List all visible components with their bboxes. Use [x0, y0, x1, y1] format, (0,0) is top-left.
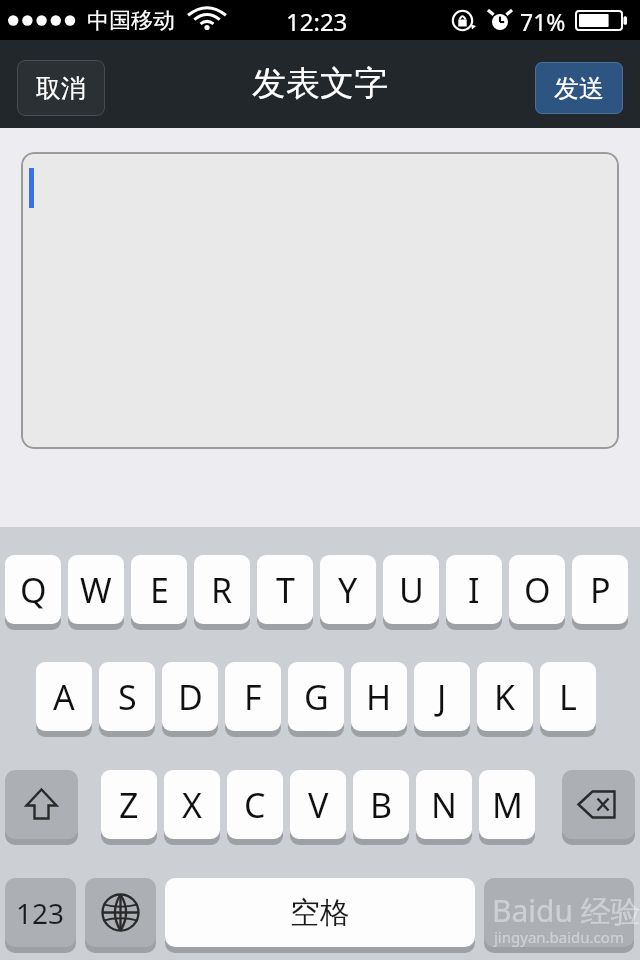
button[interactable]: W	[68, 555, 124, 624]
staticText: Q	[20, 567, 47, 613]
staticText: I	[468, 567, 480, 613]
staticText: E	[150, 567, 169, 613]
button[interactable]: M	[479, 770, 535, 839]
staticText: P	[590, 567, 611, 613]
staticText: G	[304, 674, 329, 720]
button[interactable]: V	[290, 770, 346, 839]
staticText: J	[437, 674, 447, 720]
staticText: 71%	[520, 6, 566, 37]
staticText: U	[399, 567, 424, 613]
staticText: 123	[16, 894, 65, 932]
staticText: Y	[338, 567, 358, 613]
staticText: 发表文字	[252, 62, 388, 105]
staticText: 中国移动	[87, 7, 175, 35]
button[interactable]: 取消	[17, 60, 105, 116]
button[interactable]: Switch keyboard	[85, 878, 156, 947]
staticText: jingyan.baidu.com	[494, 927, 624, 947]
staticText: 12:23	[286, 5, 348, 38]
staticText: Z	[119, 782, 139, 828]
button[interactable]: A	[36, 662, 92, 731]
staticText: D	[178, 674, 203, 720]
button[interactable]: 空格	[165, 878, 475, 947]
staticText: 取消	[36, 73, 86, 104]
button[interactable]: U	[383, 555, 439, 624]
button[interactable]: D	[162, 662, 218, 731]
staticText: 空格	[290, 894, 350, 932]
button[interactable]: X	[164, 770, 220, 839]
button[interactable]: Z	[101, 770, 157, 839]
staticText: A	[53, 674, 75, 720]
button[interactable]: N	[416, 770, 472, 839]
staticText: O	[524, 567, 551, 613]
staticText: K	[494, 674, 516, 720]
button[interactable]: E	[131, 555, 187, 624]
staticText: N	[431, 782, 457, 828]
button[interactable]: 发送	[535, 62, 623, 114]
button[interactable]: Backspace	[562, 770, 635, 839]
staticText: S	[118, 674, 137, 720]
button[interactable]: B	[353, 770, 409, 839]
button[interactable]: F	[225, 662, 281, 731]
staticText: W	[80, 567, 112, 613]
staticText: M	[492, 782, 523, 828]
button[interactable]: J	[414, 662, 470, 731]
staticText: X	[182, 782, 202, 828]
staticText: H	[366, 674, 392, 720]
staticText: R	[211, 567, 233, 613]
button[interactable]: L	[540, 662, 596, 731]
button[interactable]: Return	[484, 878, 634, 947]
button[interactable]: Q	[5, 555, 61, 624]
button[interactable]: T	[257, 555, 313, 624]
staticText: C	[244, 782, 266, 828]
button[interactable]: C	[227, 770, 283, 839]
button[interactable]: S	[99, 662, 155, 731]
staticText: Baidu 经验	[492, 890, 640, 931]
staticText: F	[244, 674, 262, 720]
button[interactable]: P	[572, 555, 628, 624]
button[interactable]: G	[288, 662, 344, 731]
button[interactable]: O	[509, 555, 565, 624]
button[interactable]: Y	[320, 555, 376, 624]
button[interactable]	[21, 152, 619, 449]
button[interactable]: Shift	[5, 770, 78, 839]
button[interactable]: 123	[5, 878, 76, 947]
button[interactable]: H	[351, 662, 407, 731]
button[interactable]: K	[477, 662, 533, 731]
staticText: V	[308, 782, 329, 828]
button[interactable]: I	[446, 555, 502, 624]
button[interactable]: R	[194, 555, 250, 624]
staticText: T	[276, 567, 295, 613]
staticText: B	[370, 782, 393, 828]
staticText: 发送	[554, 73, 604, 104]
staticText: L	[559, 674, 577, 720]
